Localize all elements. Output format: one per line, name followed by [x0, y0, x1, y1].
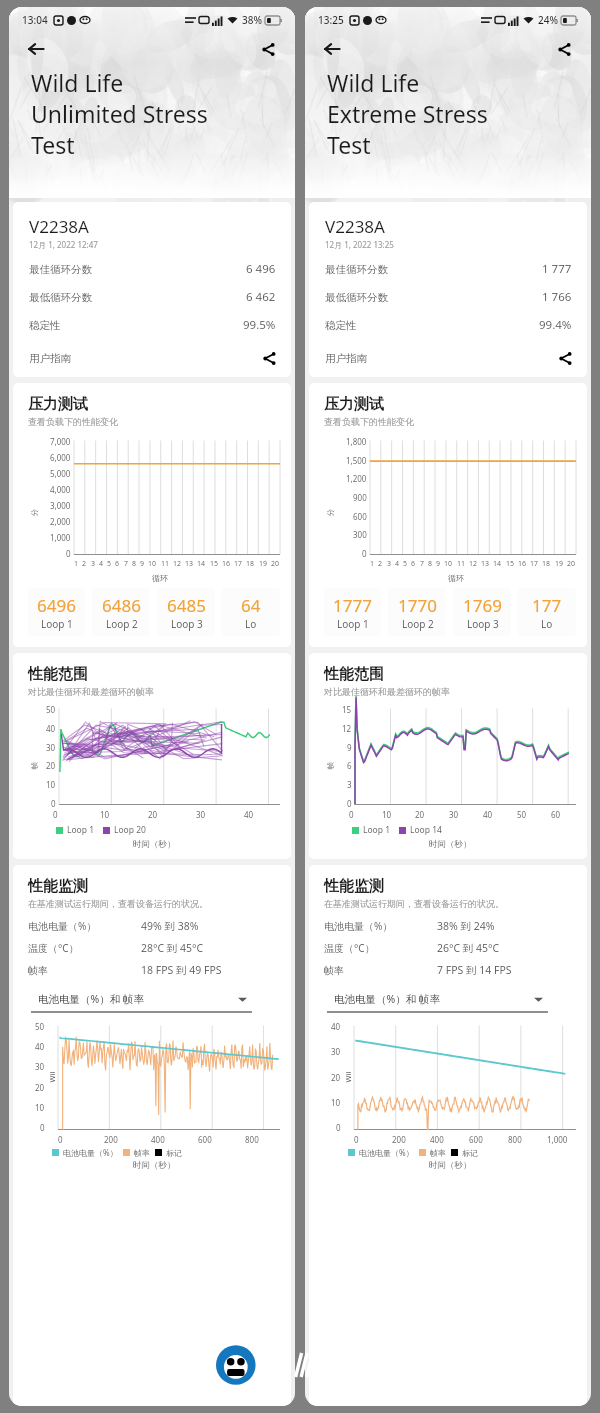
staticText: 0 [336, 1122, 341, 1133]
button[interactable]: Back [318, 35, 346, 63]
staticText: 查看负载下的性能变化 [324, 416, 414, 427]
staticText: 7,000 [50, 436, 71, 447]
staticText: 电池电量（%）和 帧率 [38, 992, 144, 1006]
staticText: 20 [331, 1072, 341, 1083]
staticText: 1,000 [50, 532, 71, 543]
staticText: 电池电量（%） [63, 1147, 118, 1158]
staticText: 电池电量（%） [28, 919, 97, 933]
staticText: 11 [457, 559, 466, 569]
staticText: Loop 2 [402, 617, 434, 631]
staticText: 4 [99, 559, 104, 569]
staticText: 18 [542, 559, 551, 569]
staticText: 18 [246, 559, 255, 569]
button[interactable]: 6486 [92, 588, 150, 636]
staticText: 1 [74, 559, 79, 569]
button[interactable]: 6496 [28, 588, 85, 636]
staticText: 1,000 [547, 1134, 568, 1145]
staticText: 14 [197, 559, 206, 569]
staticText: 99.5% [243, 317, 276, 333]
staticText: 7 FPS 到 14 FPS [437, 963, 512, 977]
staticText: 对比最佳循环和最差循环的帧率 [324, 686, 450, 697]
staticText: 1777 [333, 594, 372, 617]
staticText: 0 [349, 809, 354, 820]
staticText: 300 [353, 529, 367, 540]
staticText: 20 [271, 559, 280, 569]
staticText: 30 [46, 742, 56, 753]
staticText: 0 [362, 548, 367, 559]
button[interactable]: 6485 [157, 588, 215, 636]
button[interactable]: 177 [518, 588, 576, 636]
staticText: 时间（秒） [133, 1160, 176, 1171]
staticText: 10 [331, 1097, 341, 1108]
staticText: 6,000 [50, 452, 71, 463]
staticText: 13 [185, 559, 194, 569]
staticText: 200 [104, 1134, 118, 1145]
staticText: Loop 1 [67, 824, 95, 836]
staticText: 6 [411, 559, 416, 569]
staticText: 7 [420, 559, 425, 569]
button[interactable]: Share [550, 35, 578, 63]
staticText: 20 [35, 1082, 45, 1093]
button[interactable]: 1770 [388, 588, 446, 636]
staticText: 50 [46, 704, 56, 715]
button[interactable]: 1777 [324, 588, 381, 636]
staticText: 40 [46, 723, 56, 734]
staticText: V2238A [29, 215, 89, 238]
staticText: 帧率 [28, 964, 48, 977]
staticText: 2 [82, 559, 87, 569]
staticText: 400 [151, 1134, 165, 1145]
button[interactable]: 电池电量（%）和 帧率 [28, 987, 255, 1011]
staticText: 最低循环分数 [29, 291, 92, 304]
staticText: 13 [481, 559, 490, 569]
staticText: 15 [210, 559, 219, 569]
staticText: 帧率 [29, 757, 38, 769]
staticText: 10 [444, 559, 453, 569]
staticText: 10 [148, 559, 157, 569]
staticText: Wild Life [327, 67, 420, 98]
staticText: 3 [91, 559, 96, 569]
staticText: Loop 14 [410, 824, 442, 836]
button[interactable]: 用户指南 [325, 346, 572, 370]
staticText: 15 [506, 559, 515, 569]
staticText: Loop 1 [41, 617, 73, 631]
staticText: 3 [347, 779, 352, 790]
staticText: 时间（秒） [429, 839, 472, 850]
staticText: 40 [331, 1021, 341, 1032]
staticText: 600 [469, 1134, 483, 1145]
staticText: 最低循环分数 [325, 291, 388, 304]
staticText: 0 [58, 1134, 63, 1145]
button[interactable]: 1769 [453, 588, 511, 636]
staticText: 温度（°C） [28, 941, 79, 955]
staticText: 1,800 [346, 436, 367, 447]
staticText: 最佳循环分数 [29, 263, 92, 276]
staticText: 1769 [463, 594, 502, 617]
staticText: 压力测试 [324, 395, 384, 414]
staticText: 帧率 [430, 1148, 446, 1158]
staticText: 49% 到 38% [141, 919, 199, 933]
staticText: 6486 [102, 594, 141, 617]
button[interactable]: 64 [222, 588, 280, 636]
staticText: Test [31, 129, 75, 160]
button[interactable]: Share [254, 35, 282, 63]
staticText: 9 [140, 559, 145, 569]
staticText: 30 [196, 809, 206, 820]
button[interactable]: 电池电量（%）和 帧率 [324, 987, 551, 1011]
staticText: 帧率 [325, 757, 334, 769]
staticText: 8 [428, 559, 433, 569]
staticText: 38% [242, 13, 262, 27]
staticText: 600 [198, 1134, 212, 1145]
staticText: 12月 1, 2022 12:47 [29, 239, 98, 250]
staticText: 30 [449, 809, 459, 820]
staticText: 13:04 [22, 13, 48, 27]
staticText: 7 [124, 559, 129, 569]
button[interactable]: 用户指南 [29, 346, 276, 370]
staticText: Loop 3 [467, 617, 499, 631]
staticText: 1,500 [346, 455, 367, 466]
button[interactable]: Back [22, 35, 50, 63]
staticText: 性能监测 [28, 877, 88, 896]
staticText: 用户指南 [325, 352, 367, 365]
staticText: 14 [493, 559, 502, 569]
staticText: 0 [40, 1122, 45, 1133]
staticText: 17 [530, 559, 539, 569]
staticText: 900 [353, 492, 367, 503]
